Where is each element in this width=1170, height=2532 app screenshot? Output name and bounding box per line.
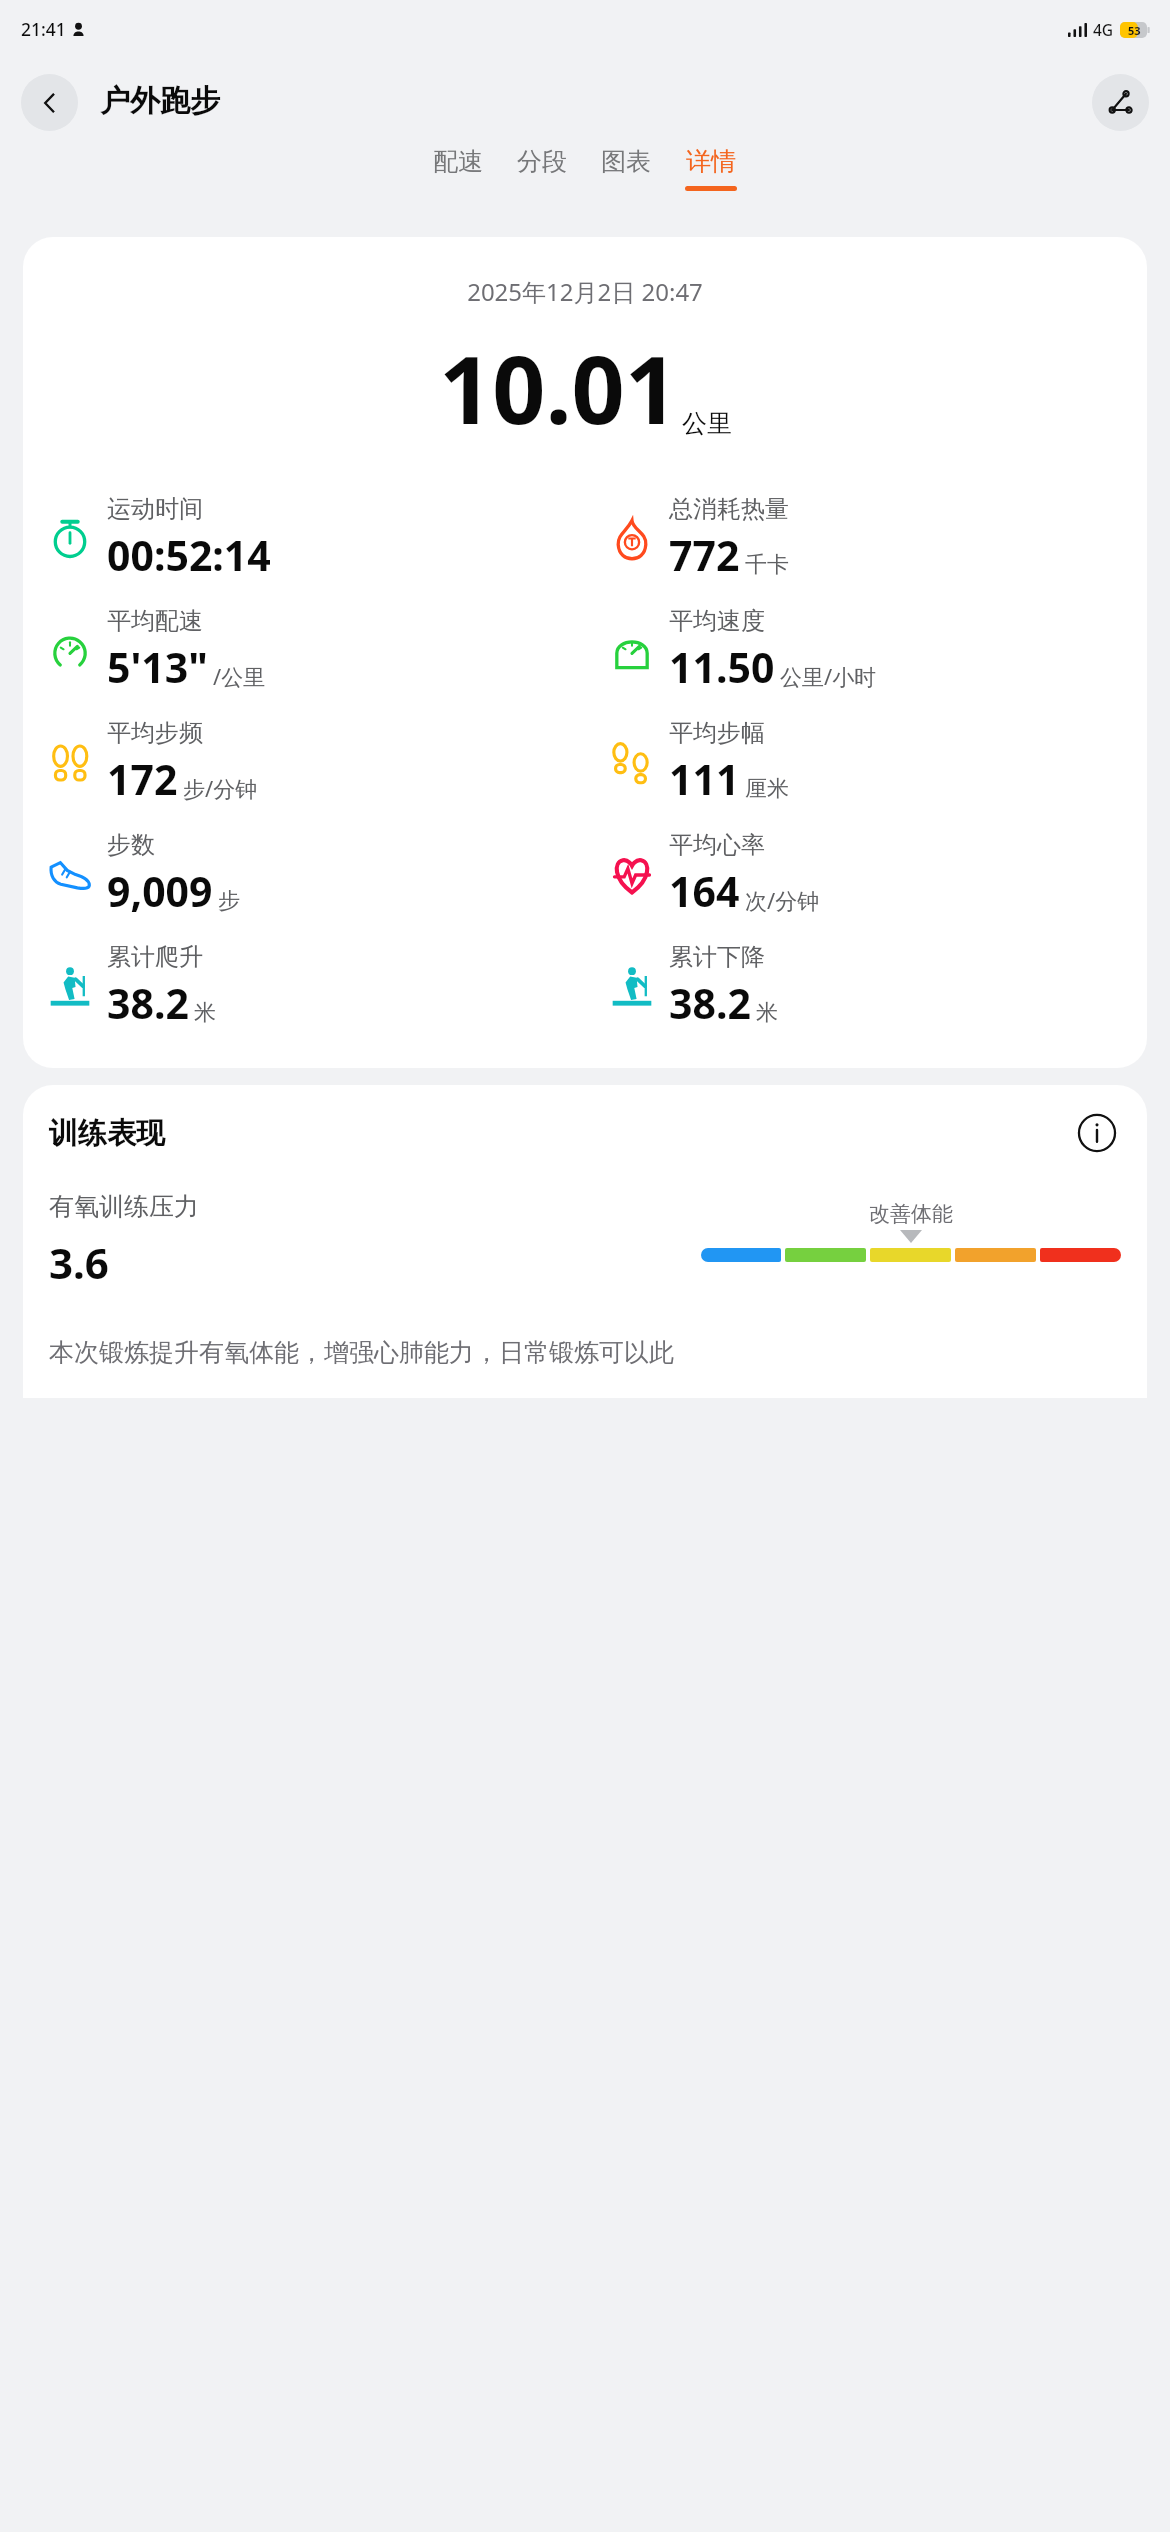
staticText: 111 bbox=[669, 751, 740, 807]
staticText: 5'13" bbox=[107, 639, 208, 695]
staticText: 38.2 bbox=[669, 975, 751, 1031]
staticText: 配速 bbox=[433, 146, 483, 177]
staticText: /公里 bbox=[213, 661, 266, 691]
staticText: 详情 bbox=[686, 146, 736, 177]
staticText: 本次锻炼提升有氧体能，增强心肺能力，日常锻炼可以此 bbox=[49, 1337, 674, 1368]
staticText: 分段 bbox=[517, 146, 567, 177]
staticText: 图表 bbox=[601, 146, 651, 177]
button[interactable]: 步数 bbox=[47, 830, 585, 919]
button[interactable]: 平均步频 bbox=[47, 718, 585, 807]
staticText: 公里 bbox=[682, 408, 732, 439]
button[interactable]: 总消耗热量 bbox=[609, 494, 1147, 583]
staticText: 平均步幅 bbox=[669, 718, 765, 748]
staticText: 步 bbox=[218, 887, 240, 915]
staticText: 累计爬升 bbox=[107, 942, 203, 972]
button[interactable]: 图表 bbox=[601, 146, 651, 186]
staticText: 9,009 bbox=[107, 863, 213, 919]
button[interactable]: 平均步幅 bbox=[609, 718, 1147, 807]
staticText: 累计下降 bbox=[669, 942, 765, 972]
staticText: 户外跑步 bbox=[100, 82, 220, 120]
button[interactable]: 分段 bbox=[517, 146, 567, 186]
staticText: 运动时间 bbox=[107, 494, 203, 524]
button[interactable]: 平均速度 bbox=[609, 606, 1147, 695]
staticText: 有氧训练压力 bbox=[49, 1191, 199, 1222]
staticText: 训练表现 bbox=[49, 1115, 165, 1152]
staticText: 164 bbox=[669, 863, 740, 919]
staticText: 53 bbox=[1128, 23, 1141, 38]
staticText: 步数 bbox=[107, 830, 155, 860]
staticText: 2025年12月2日 20:47 bbox=[23, 275, 1147, 308]
staticText: 172 bbox=[107, 751, 178, 807]
button[interactable]: 平均配速 bbox=[47, 606, 585, 695]
button[interactable]: 累计下降 bbox=[609, 942, 1147, 1031]
button[interactable]: 累计爬升 bbox=[47, 942, 585, 1031]
staticText: 米 bbox=[194, 999, 216, 1027]
staticText: 千卡 bbox=[745, 551, 789, 579]
button[interactable]: 详情 bbox=[685, 146, 737, 191]
staticText: 平均速度 bbox=[669, 606, 765, 636]
staticText: 步/分钟 bbox=[183, 773, 258, 803]
staticText: 平均心率 bbox=[669, 830, 765, 860]
staticText: 次/分钟 bbox=[745, 885, 820, 915]
staticText: 4G bbox=[1093, 19, 1114, 40]
button[interactable]: 平均心率 bbox=[609, 830, 1147, 919]
staticText: 21:41 bbox=[21, 17, 66, 41]
staticText: 11.50 bbox=[669, 639, 775, 695]
button[interactable]: Share bbox=[1092, 74, 1149, 131]
staticText: 38.2 bbox=[107, 975, 189, 1031]
button[interactable]: 运动时间 bbox=[47, 494, 585, 583]
staticText: 平均配速 bbox=[107, 606, 203, 636]
staticText: 米 bbox=[756, 999, 778, 1027]
staticText: 772 bbox=[669, 527, 740, 583]
staticText: 改善体能 bbox=[869, 1201, 953, 1227]
button[interactable]: 配速 bbox=[433, 146, 483, 186]
staticText: 平均步频 bbox=[107, 718, 203, 748]
staticText: 3.6 bbox=[49, 1234, 109, 1291]
button[interactable]: Back bbox=[21, 74, 78, 131]
staticText: 10.01 bbox=[439, 325, 678, 452]
staticText: 00:52:14 bbox=[107, 527, 271, 583]
staticText: 公里/小时 bbox=[780, 661, 877, 691]
staticText: 总消耗热量 bbox=[669, 494, 789, 524]
button[interactable]: Info bbox=[1073, 1109, 1121, 1157]
staticText: 厘米 bbox=[745, 775, 789, 803]
